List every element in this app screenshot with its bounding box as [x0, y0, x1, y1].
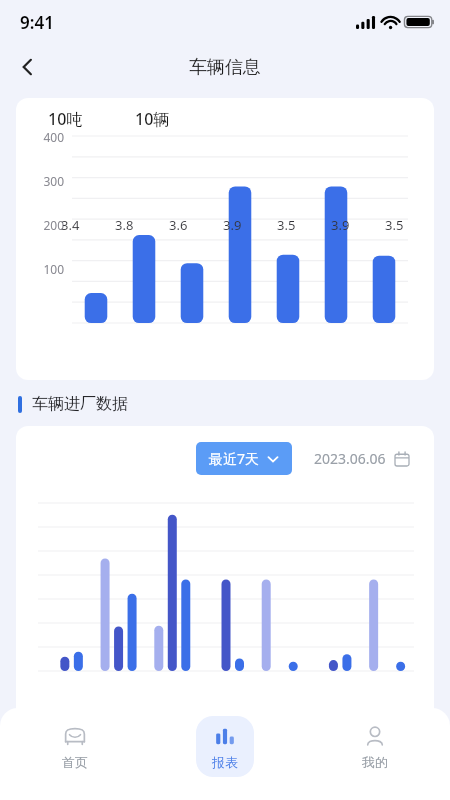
- staticText: 300: [34, 173, 64, 189]
- staticText: 9:41: [20, 11, 54, 34]
- staticText: 3.9: [223, 216, 242, 234]
- staticText: 3.9: [331, 216, 350, 234]
- staticText: 2023.06.06: [314, 449, 386, 468]
- staticText: 3.6: [169, 216, 188, 234]
- staticText: 3.4: [61, 216, 80, 234]
- button[interactable]: 首页: [46, 716, 104, 777]
- staticText: 3.5: [277, 216, 296, 234]
- staticText: 3.5: [385, 216, 404, 234]
- button[interactable]: 我的: [346, 716, 404, 777]
- staticText: 400: [34, 129, 64, 145]
- staticText: 10吨: [48, 108, 83, 130]
- button[interactable]: 2023.06.06: [303, 442, 420, 475]
- staticText: 100: [34, 261, 64, 277]
- staticText: 3.8: [115, 216, 134, 234]
- button[interactable]: 报表: [196, 716, 254, 777]
- staticText: 最近7天: [209, 449, 260, 468]
- staticText: 报表: [212, 754, 238, 770]
- button[interactable]: Back: [8, 47, 48, 87]
- staticText: 200: [34, 217, 64, 233]
- staticText: 车辆进厂数据: [32, 394, 128, 414]
- staticText: 我的: [362, 754, 388, 770]
- button[interactable]: 最近7天: [196, 442, 292, 475]
- staticText: 首页: [62, 754, 88, 770]
- staticText: 车辆信息: [189, 56, 261, 79]
- staticText: 10辆: [135, 108, 170, 130]
